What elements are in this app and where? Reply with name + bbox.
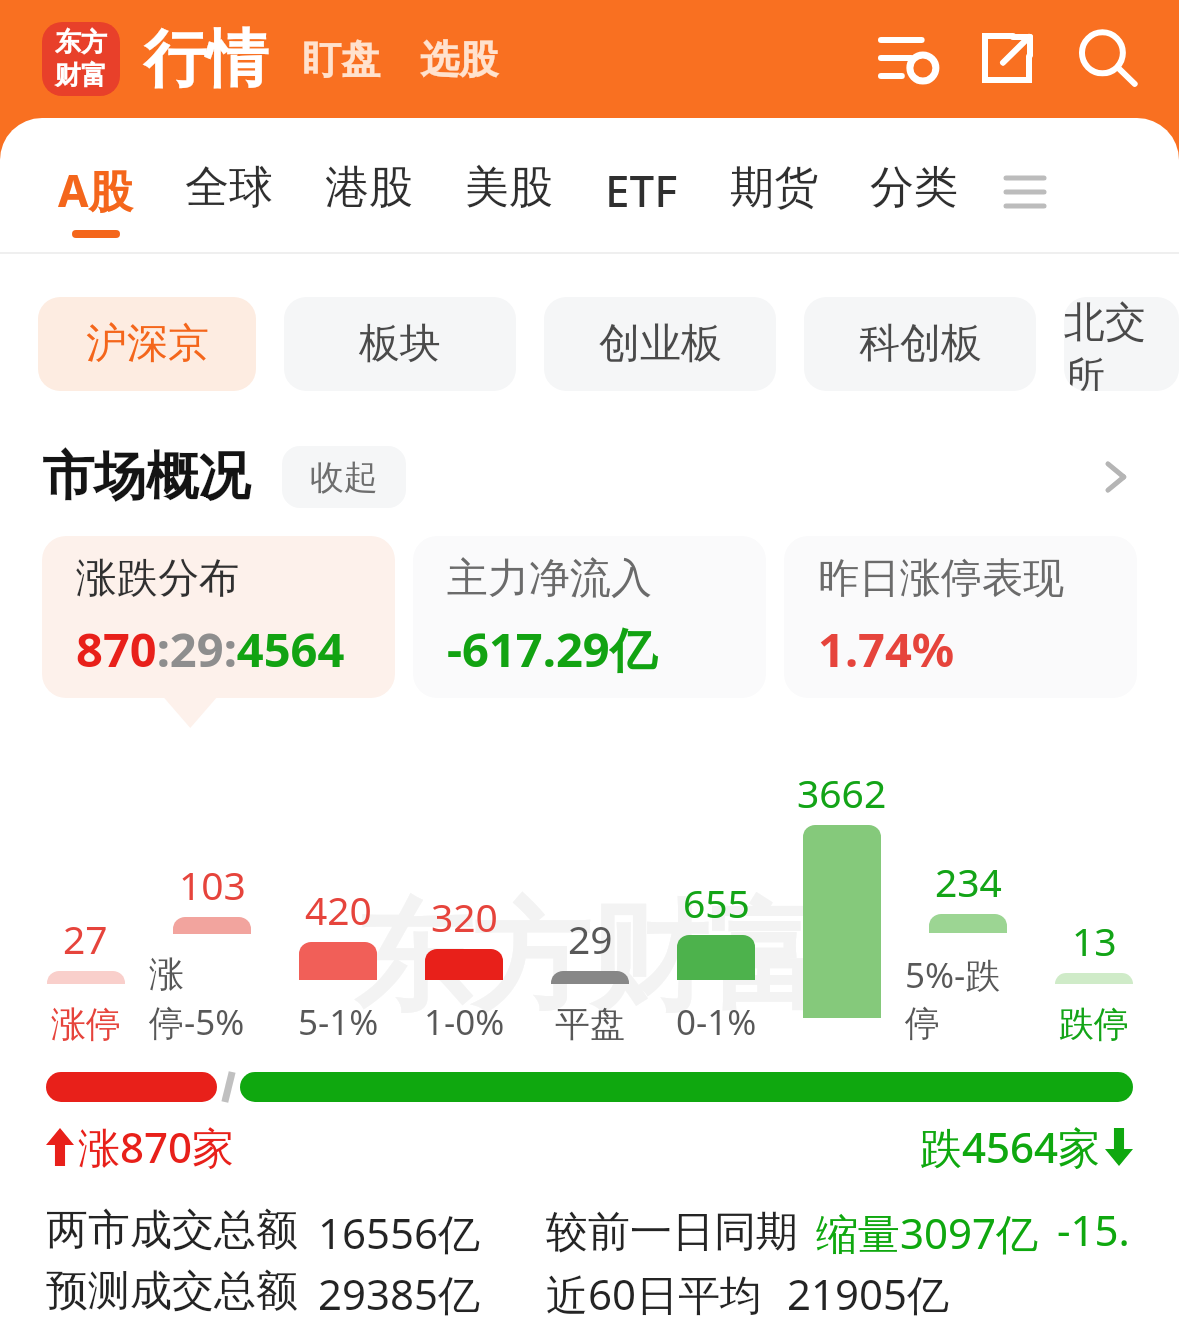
button[interactable]: 创业板	[544, 297, 776, 391]
button[interactable]: 分类	[854, 156, 974, 229]
staticText: 涨跌分布	[76, 553, 240, 605]
button[interactable]: 655	[653, 876, 779, 1046]
staticText: 21905亿	[787, 1265, 950, 1322]
staticText: 平盘	[555, 1002, 625, 1046]
staticText: ETF	[605, 160, 678, 220]
button[interactable]: 选股	[414, 29, 504, 90]
staticText: 选股	[420, 35, 498, 84]
staticText: 全球	[185, 160, 273, 215]
button[interactable]: 科创板	[804, 297, 1036, 391]
staticText: 5%-跌停	[905, 951, 1031, 1046]
staticText: 320	[431, 890, 498, 943]
button[interactable]: ETF	[589, 156, 694, 234]
staticText: -15.76%	[1057, 1201, 1133, 1263]
button[interactable]: 沪深京	[38, 297, 256, 391]
staticText: 29385亿	[318, 1265, 481, 1322]
staticText: 昨日涨停表现	[818, 553, 1064, 605]
staticText: 行情	[144, 20, 268, 98]
staticText: 收起	[310, 456, 378, 499]
staticText: 北交所	[1064, 297, 1179, 391]
button[interactable]: 盯盘	[296, 29, 386, 90]
button[interactable]: 29	[527, 912, 653, 1046]
staticText: 港股	[325, 160, 413, 215]
button[interactable]: 期货	[714, 156, 834, 229]
button[interactable]: 13	[1031, 914, 1157, 1046]
staticText: 0-1%	[676, 998, 757, 1046]
button[interactable]: 涨跌分布	[42, 536, 395, 698]
button[interactable]: Sort settings	[873, 24, 943, 94]
staticText: 板块	[359, 318, 441, 370]
staticText: 涨870家	[78, 1118, 235, 1175]
staticText: 盯盘	[302, 35, 380, 84]
staticText: 13	[1072, 914, 1117, 967]
button[interactable]: 北交所	[1064, 297, 1179, 391]
button[interactable]: 昨日涨停表现	[784, 536, 1137, 698]
staticText: 市场概况	[42, 444, 250, 510]
button[interactable]: 103	[149, 858, 275, 1046]
button[interactable]: 3662	[779, 766, 905, 1046]
button[interactable]: 港股	[309, 156, 429, 229]
staticText: 东方财富	[354, 884, 826, 1033]
staticText: 较前一日同期	[546, 1206, 798, 1259]
staticText: 655	[683, 876, 750, 929]
staticText: 103	[179, 858, 246, 911]
button[interactable]: 27	[22, 912, 149, 1046]
staticText: 跌4564家	[920, 1118, 1101, 1175]
staticText: 5-1%	[298, 998, 379, 1046]
staticText: 缩量3097亿	[816, 1204, 1039, 1261]
button[interactable]: 234	[905, 855, 1031, 1046]
staticText: 870:29:4564	[76, 617, 345, 681]
button[interactable]: 主力净流入	[413, 536, 766, 698]
staticText: 234	[935, 855, 1002, 908]
button[interactable]: 全球	[169, 156, 289, 229]
staticText: 期货	[730, 160, 818, 215]
button[interactable]: Share	[973, 24, 1043, 94]
button[interactable]: All categories	[994, 156, 1056, 226]
button[interactable]: 东方财富 home	[42, 22, 120, 96]
button[interactable]: 市场概况	[0, 438, 1179, 516]
staticText: 沪深京	[86, 318, 209, 370]
staticText: 分类	[870, 160, 958, 215]
staticText: 涨停	[51, 1002, 121, 1046]
staticText: 3662	[797, 766, 887, 819]
staticText: 东方	[55, 26, 107, 59]
button[interactable]: 美股	[449, 156, 569, 229]
staticText: 两市成交总额	[46, 1204, 298, 1257]
button[interactable]: Search	[1073, 24, 1143, 94]
button[interactable]: 板块	[284, 297, 516, 391]
staticText: 创业板	[599, 318, 722, 370]
staticText: 1.74%	[818, 617, 955, 681]
staticText: A股	[58, 160, 133, 220]
staticText: 美股	[465, 160, 553, 215]
button[interactable]: 320	[401, 890, 527, 1046]
staticText: 涨停-5%	[149, 952, 275, 1046]
button[interactable]: 420	[275, 883, 401, 1046]
button[interactable]: A股	[42, 156, 149, 242]
staticText: 财富	[55, 59, 107, 92]
button[interactable]: 收起	[282, 446, 406, 508]
staticText: -617.29亿	[447, 617, 657, 681]
staticText: 预测成交总额	[46, 1265, 298, 1318]
staticText: 29	[568, 912, 613, 965]
staticText: 科创板	[859, 318, 982, 370]
staticText: 跌停	[1059, 1002, 1129, 1046]
staticText: 主力净流入	[447, 553, 652, 605]
staticText: 近60日平均	[546, 1265, 763, 1322]
staticText: 16556亿	[318, 1204, 481, 1261]
staticText: 27	[63, 912, 108, 965]
staticText: 420	[305, 883, 372, 936]
staticText: 1-0%	[424, 998, 505, 1046]
